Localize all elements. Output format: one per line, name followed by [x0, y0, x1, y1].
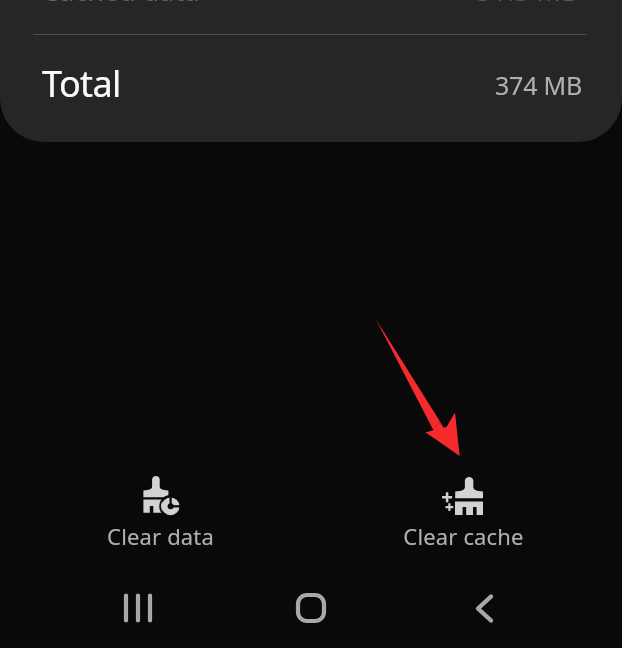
button[interactable]: Home: [275, 578, 347, 638]
button[interactable]: Back: [448, 578, 520, 638]
button[interactable]: Cached data: [0, 0, 622, 32]
staticText: Clear data: [107, 521, 214, 551]
button[interactable]: Recent apps: [102, 578, 174, 638]
staticText: 31.3 MB: [476, 0, 579, 4]
button[interactable]: Total: [0, 34, 622, 139]
button[interactable]: Clear data: [85, 466, 235, 554]
staticText: 374 MB: [495, 68, 583, 102]
staticText: Clear cache: [403, 521, 524, 551]
button[interactable]: Clear cache: [388, 466, 538, 554]
staticText: Cached data: [42, 0, 200, 4]
staticText: Total: [42, 59, 121, 108]
